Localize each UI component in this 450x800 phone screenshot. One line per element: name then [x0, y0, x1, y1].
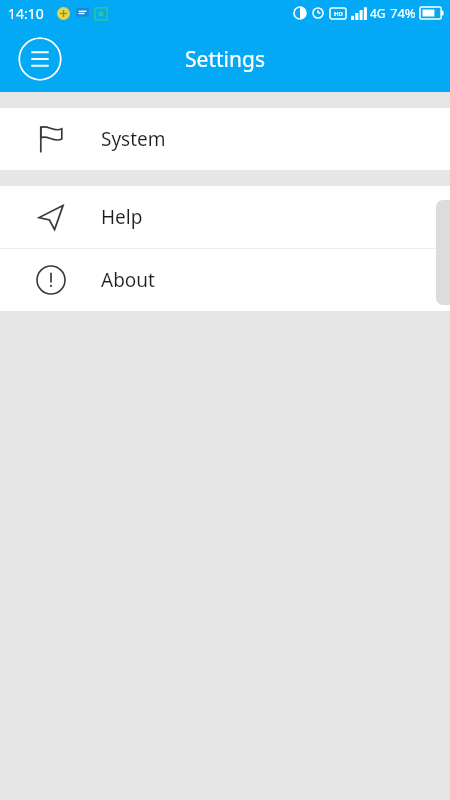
staticText: Help [101, 204, 143, 230]
button[interactable]: Menu [18, 37, 62, 81]
staticText: HD [334, 10, 343, 18]
staticText: System [101, 126, 166, 152]
staticText: About [101, 267, 155, 293]
button[interactable]: Help [0, 186, 450, 248]
staticText: 14:10 [8, 4, 44, 23]
button[interactable]: About [0, 249, 450, 311]
staticText: Settings [0, 45, 450, 74]
button[interactable]: System [0, 108, 450, 170]
staticText: 74% [390, 4, 416, 22]
staticText: 4G [370, 5, 386, 21]
